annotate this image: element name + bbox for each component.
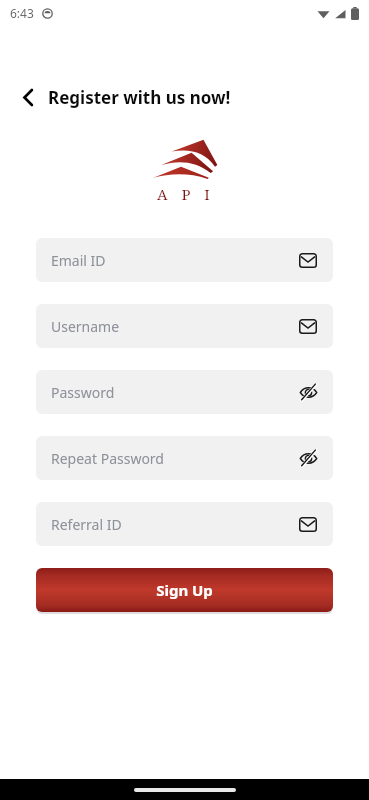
button[interactable]: Show password (297, 381, 319, 403)
staticText: Register with us now! (48, 86, 231, 109)
staticText: Email ID (51, 251, 297, 270)
button[interactable]: Back (12, 81, 44, 113)
staticText: A P I (157, 184, 212, 204)
staticText: Referral ID (51, 515, 297, 534)
button[interactable]: Repeat Password (36, 436, 333, 480)
button[interactable]: Show password (297, 447, 319, 469)
staticText: 6:43 (10, 5, 34, 21)
button[interactable]: Email ID (36, 238, 333, 282)
button[interactable]: Sign Up (36, 568, 333, 612)
button[interactable]: Password (36, 370, 333, 414)
staticText: Password (51, 383, 297, 402)
other: Email (297, 513, 319, 535)
button[interactable]: Referral ID (36, 502, 333, 546)
other: Email (297, 315, 319, 337)
button[interactable]: Username (36, 304, 333, 348)
other: Email (297, 249, 319, 271)
staticText: Repeat Password (51, 449, 297, 468)
staticText: Sign Up (156, 580, 213, 600)
staticText: Username (51, 317, 297, 336)
